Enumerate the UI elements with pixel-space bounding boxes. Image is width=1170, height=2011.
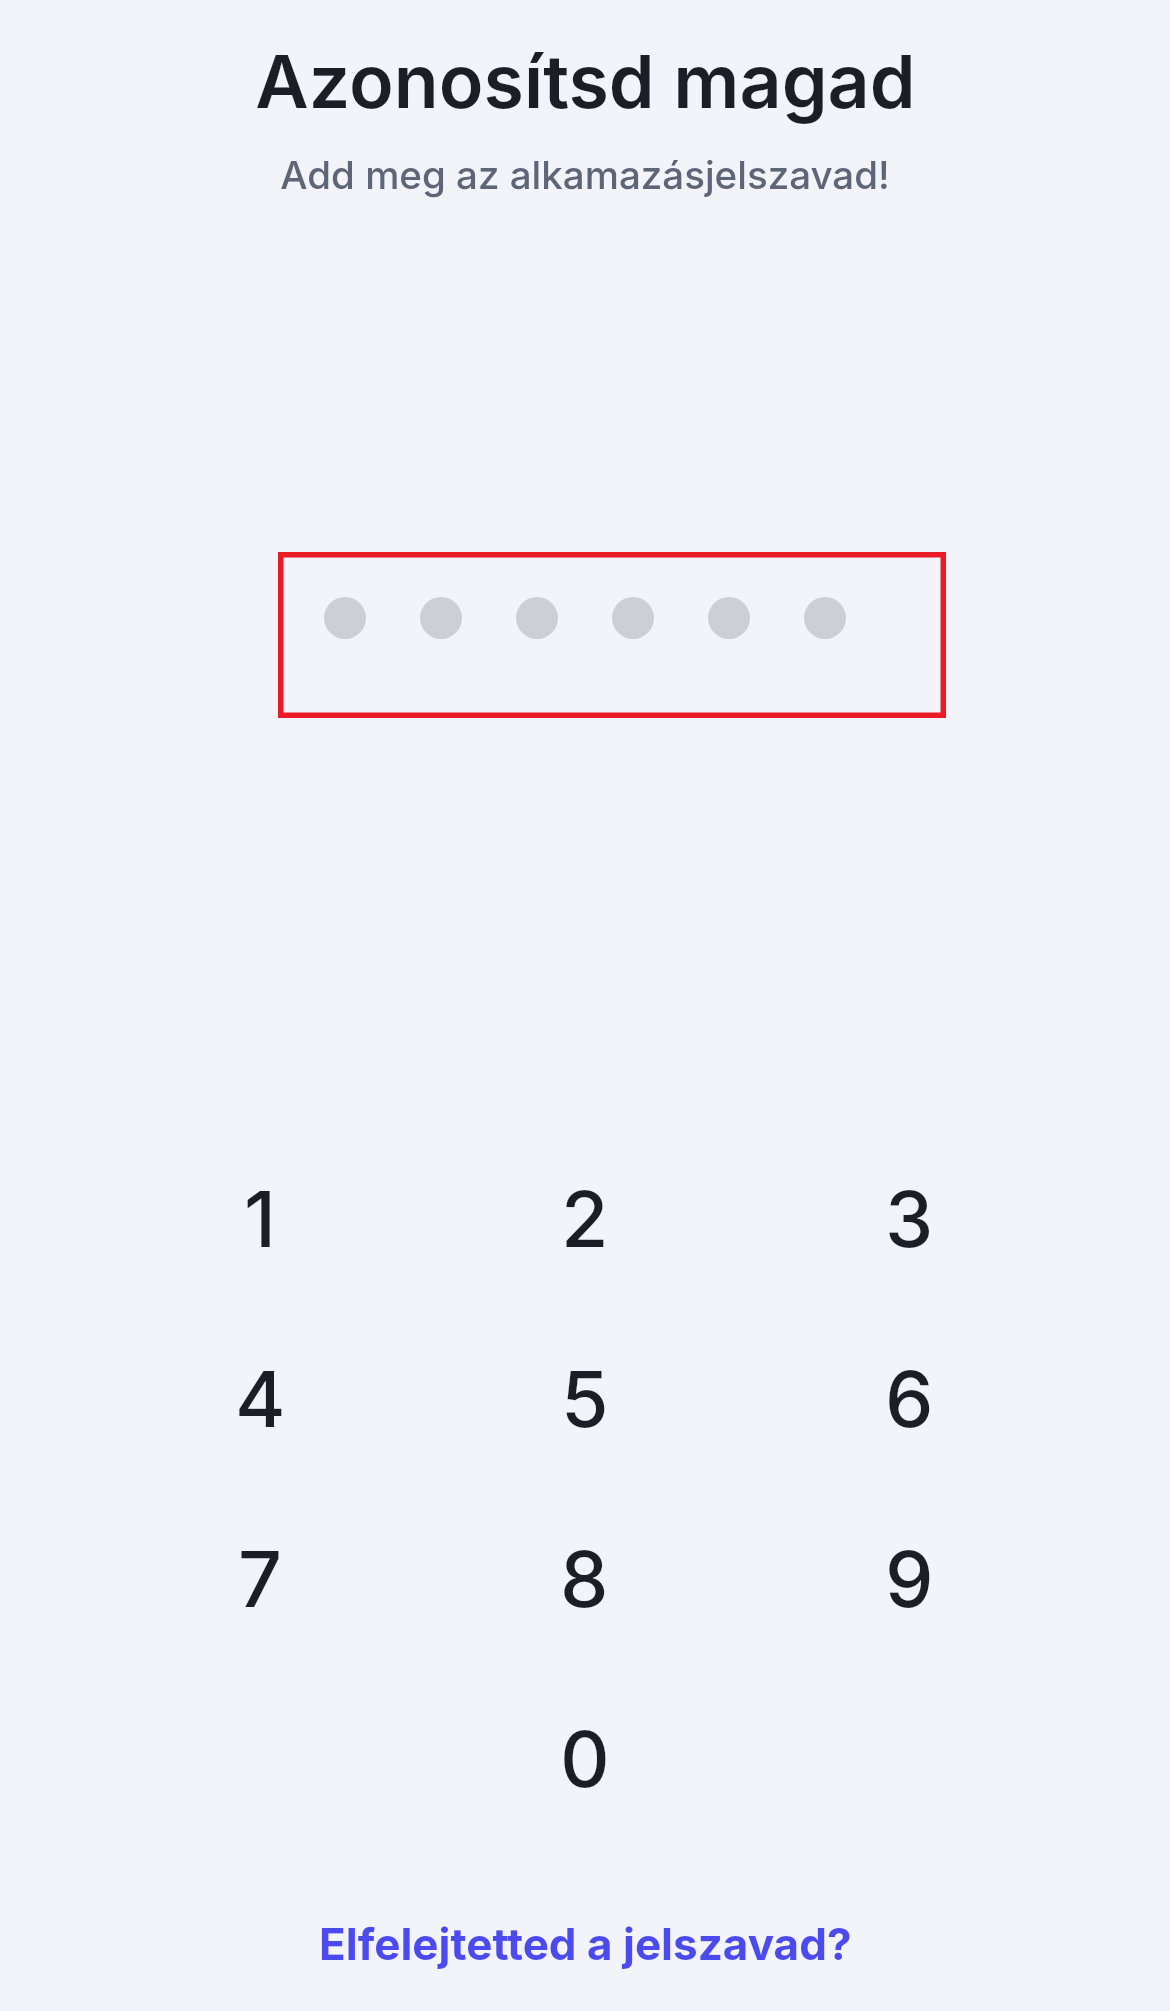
staticText: 2	[561, 1172, 609, 1265]
button[interactable]: 0	[422, 1668, 747, 1848]
staticText: 3	[885, 1172, 934, 1265]
staticText: Azonosítsd magad	[255, 37, 916, 126]
staticText: Elfelejtetted a jelszavad?	[319, 1917, 852, 1970]
staticText: 6	[885, 1352, 934, 1445]
button[interactable]: PIN code field, 6 digits	[0, 552, 1170, 718]
staticText: 1	[244, 1172, 276, 1265]
button[interactable]: 5	[422, 1308, 747, 1488]
button[interactable]: 3	[747, 1128, 1072, 1308]
button[interactable]: 6	[747, 1308, 1072, 1488]
staticText: 8	[560, 1532, 609, 1625]
button[interactable]: 8	[422, 1488, 747, 1668]
button[interactable]: 9	[747, 1488, 1072, 1668]
button[interactable]: 2	[422, 1128, 747, 1308]
staticText: 7	[238, 1532, 282, 1625]
button[interactable]: 7	[98, 1488, 422, 1668]
staticText: 5	[561, 1352, 609, 1445]
staticText: 0	[560, 1712, 610, 1805]
button[interactable]: Elfelejtetted a jelszavad?	[0, 1901, 1170, 1997]
staticText: 9	[885, 1532, 934, 1625]
staticText: Add meg az alkamazásjelszavad!	[280, 152, 890, 199]
button[interactable]: 4	[98, 1308, 422, 1488]
button[interactable]: 1	[98, 1128, 422, 1308]
staticText: 4	[235, 1352, 286, 1445]
